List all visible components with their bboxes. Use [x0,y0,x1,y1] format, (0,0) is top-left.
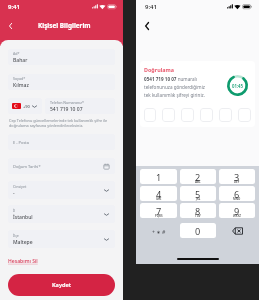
button[interactable]: E - Posta [8,134,115,150]
button[interactable]: Back [5,20,16,31]
button[interactable]: Ad* [8,49,115,65]
button[interactable]: Soyad* [8,74,115,90]
button[interactable]: Back [140,19,154,33]
staticText: 8 [195,205,201,218]
button[interactable]: Symbols [140,223,177,239]
staticText: Soyad* [13,76,26,81]
button[interactable]: Telefon Numaranız* [45,98,115,114]
staticText: Kılmaz [13,82,29,89]
staticText: 9 [234,205,240,218]
button[interactable]: Cinsiyet [8,181,115,199]
staticText: + ∗ # [152,228,166,235]
staticText: İlçe [13,233,19,238]
staticText: İstanbul [13,214,33,221]
button[interactable]: 6 [219,186,255,201]
staticText: Bahar [13,57,28,64]
button[interactable]: 7 [140,203,177,218]
staticText: - [13,190,15,197]
staticText: 7 [156,205,162,218]
button[interactable]: 8 [180,203,216,218]
staticText: Telefon Numaranız* [50,100,84,105]
staticText: 0 [195,225,201,238]
button[interactable]: Kaydet [8,274,115,296]
button[interactable]: İl [8,205,115,223]
button[interactable]: 3 [219,169,255,184]
staticText: 1 [156,171,162,184]
staticText: 2 [195,171,201,184]
button[interactable]: +90 [8,98,42,114]
staticText: 9:41 [8,3,20,11]
staticText: Doğrulama [144,66,174,73]
button[interactable]: 0 [180,223,216,238]
button[interactable] [200,108,213,122]
button[interactable] [162,108,175,122]
button[interactable] [219,108,232,122]
staticText: PQRS [155,214,163,218]
staticText: 4 [156,188,162,201]
staticText: 3 [234,171,240,184]
staticText: WXYZ [233,214,242,218]
button[interactable]: Hesabımı Sil [8,258,38,265]
staticText: ABC [195,180,201,184]
button[interactable] [181,108,194,122]
staticText: Maltepe [13,239,33,246]
button[interactable]: 1 [140,169,177,184]
staticText: 01:45 [232,83,244,89]
button[interactable]: 2 [180,169,216,184]
staticText: 6 [234,188,240,201]
staticText: 5 [195,188,201,201]
staticText: MNO [233,197,241,201]
staticText: TUV [195,214,201,218]
staticText: Cinsiyet [13,184,27,189]
staticText: Kaydet [52,281,72,289]
staticText: JKL [196,197,201,201]
staticText: GHI [156,197,162,201]
other: Pick date [103,163,110,170]
button[interactable]: 9 [219,203,255,218]
button[interactable]: İlçe [8,230,115,248]
button[interactable]: 4 [140,186,177,201]
staticText: Doğum Tarihi* [13,164,103,169]
staticText: Cep Telefonu güncellemelerinde tek kulla… [9,118,112,128]
staticText: 541 719 10 07 [50,106,83,113]
staticText: Ad* [13,51,20,56]
button[interactable]: Doğum Tarihi* [8,158,115,174]
staticText: 0541 719 10 07 numaralı telefonunuza gön… [144,76,208,98]
button[interactable]: Delete [219,223,255,239]
button[interactable] [238,108,251,122]
staticText: 9:41 [145,3,157,11]
staticText: DEF [234,180,240,184]
staticText: +90 [23,104,30,109]
staticText: İl [13,208,16,213]
button[interactable] [144,108,156,122]
button[interactable]: 5 [180,186,216,201]
staticText: Hesabımı Sil [8,258,38,265]
staticText: E - Posta [13,140,110,145]
staticText: Kişisel Bilgilerim [38,21,91,30]
